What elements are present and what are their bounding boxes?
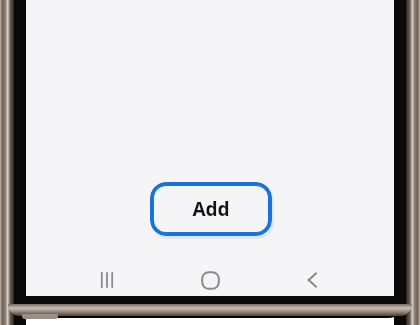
button[interactable]: Back [291,258,335,302]
button[interactable]: Recents [85,258,129,302]
button[interactable]: Add [150,182,272,236]
button[interactable]: Home [188,258,232,302]
staticText: Add [192,196,230,222]
